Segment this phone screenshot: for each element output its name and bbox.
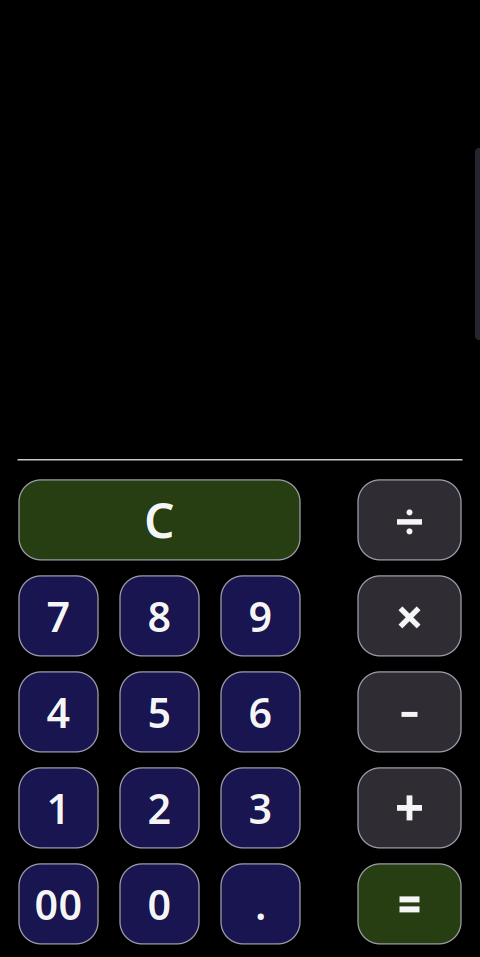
staticText: 9 [248, 588, 272, 643]
staticText: 1 [46, 780, 70, 835]
staticText: C [144, 488, 175, 552]
button[interactable]: Subtract [358, 672, 461, 752]
button[interactable]: 1 [19, 768, 98, 848]
button[interactable]: Multiply [358, 576, 461, 656]
button[interactable]: 4 [19, 672, 98, 752]
staticText: 4 [46, 684, 70, 739]
button[interactable]: Equals [358, 864, 461, 944]
button[interactable]: 3 [221, 768, 300, 848]
button[interactable]: Add [358, 768, 461, 848]
button[interactable]: 9 [221, 576, 300, 656]
button[interactable]: 5 [120, 672, 199, 752]
button[interactable]: 00 [19, 864, 98, 944]
staticText: 3 [248, 780, 272, 835]
button[interactable]: 8 [120, 576, 199, 656]
staticText: 0 [147, 876, 171, 931]
staticText: 7 [46, 588, 70, 643]
button[interactable]: 6 [221, 672, 300, 752]
button[interactable]: 0 [120, 864, 199, 944]
button[interactable]: C [19, 480, 300, 560]
staticText: 8 [147, 588, 171, 643]
button[interactable]: . [221, 864, 300, 944]
button[interactable]: 7 [19, 576, 98, 656]
staticText: 5 [147, 684, 171, 739]
staticText: 2 [147, 780, 171, 835]
staticText: . [255, 876, 266, 931]
staticText: 6 [248, 684, 272, 739]
button[interactable]: 2 [120, 768, 199, 848]
button[interactable]: Divide [358, 480, 461, 560]
staticText: 00 [34, 876, 82, 931]
